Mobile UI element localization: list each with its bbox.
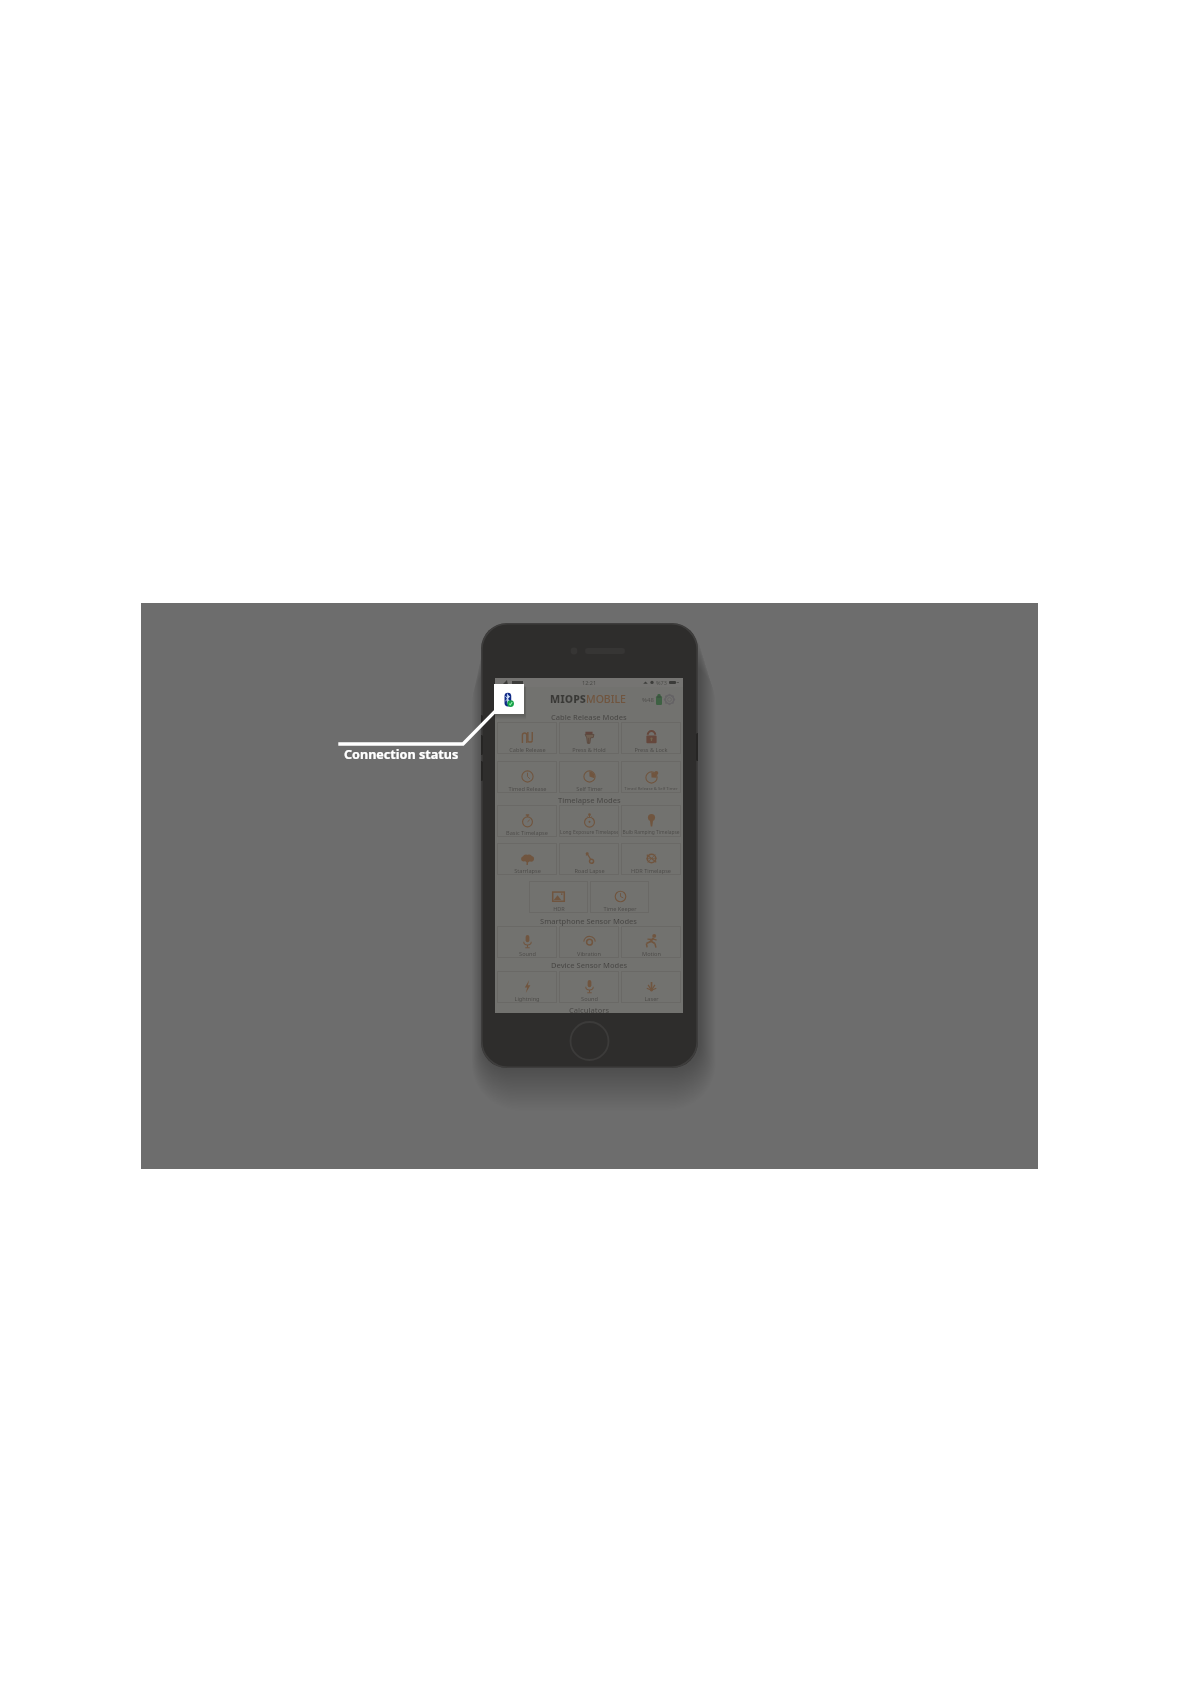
button[interactable]: Sound xyxy=(559,971,619,1003)
button[interactable]: Settings xyxy=(663,693,676,706)
staticText: Press & Lock xyxy=(634,746,668,754)
button[interactable]: Time Keeper xyxy=(590,881,649,913)
staticText: Timelapse Modes xyxy=(558,795,621,805)
staticText: Self Timer xyxy=(576,785,603,793)
staticText: Press & Hold xyxy=(572,746,606,754)
staticText: Connection status xyxy=(344,746,459,763)
button[interactable]: Press & Lock xyxy=(621,722,681,754)
staticText: Sound xyxy=(519,950,536,958)
staticText: Smartphone Sensor Modes xyxy=(540,916,638,926)
button[interactable]: Sound xyxy=(497,926,557,958)
button[interactable]: Bulb Ramping Timelapse xyxy=(621,805,681,837)
staticText: Long Exposure Timelapse xyxy=(560,829,618,836)
button[interactable]: HDR Timelapse xyxy=(621,843,681,875)
staticText: Starrlapse xyxy=(514,867,541,875)
button[interactable]: Timed Release xyxy=(497,761,557,793)
staticText: Road Lapse xyxy=(574,867,605,875)
button[interactable]: Road Lapse xyxy=(559,843,619,875)
button[interactable]: Vibration xyxy=(559,926,619,958)
staticText: Time Keeper xyxy=(603,905,637,913)
staticText: %73 xyxy=(656,679,667,686)
button[interactable]: HDR xyxy=(529,881,588,913)
staticText: HDR xyxy=(553,905,565,913)
staticText: Laser xyxy=(644,995,659,1003)
staticText: Device Sensor Modes xyxy=(551,960,628,970)
staticText: Cable Release Modes xyxy=(551,712,627,722)
button[interactable]: Starrlapse xyxy=(497,843,557,875)
staticText: Bulb Ramping Timelapse xyxy=(622,829,680,836)
button[interactable]: Basic Timelapse xyxy=(497,805,557,837)
staticText: Calculators xyxy=(569,1005,610,1015)
button[interactable]: Self Timer xyxy=(559,761,619,793)
staticText: Timed Release & Self Timer xyxy=(624,786,678,792)
staticText: Lightning xyxy=(514,995,540,1003)
button[interactable]: Timed Release & Self Timer xyxy=(621,761,681,793)
button[interactable]: Press & Hold xyxy=(559,722,619,754)
staticText: 12:21 xyxy=(582,679,597,686)
button[interactable]: Motion xyxy=(621,926,681,958)
button[interactable]: Lightning xyxy=(497,971,557,1003)
staticText: MIOPS xyxy=(550,692,586,706)
staticText: Sound xyxy=(581,995,598,1003)
staticText: Cable Release xyxy=(509,746,546,754)
staticText: Basic Timelapse xyxy=(506,829,548,837)
staticText: Motion xyxy=(642,950,661,958)
button[interactable]: Laser xyxy=(621,971,681,1003)
button[interactable]: Cable Release xyxy=(497,722,557,754)
staticText: Vibration xyxy=(577,950,601,958)
staticText: Timed Release xyxy=(508,785,547,793)
staticText: MOBILE xyxy=(586,692,626,706)
staticText: HDR Timelapse xyxy=(631,867,671,875)
button[interactable]: Long Exposure Timelapse xyxy=(559,805,619,837)
staticText: %48 xyxy=(642,696,654,704)
button[interactable]: Connection status xyxy=(494,684,524,714)
